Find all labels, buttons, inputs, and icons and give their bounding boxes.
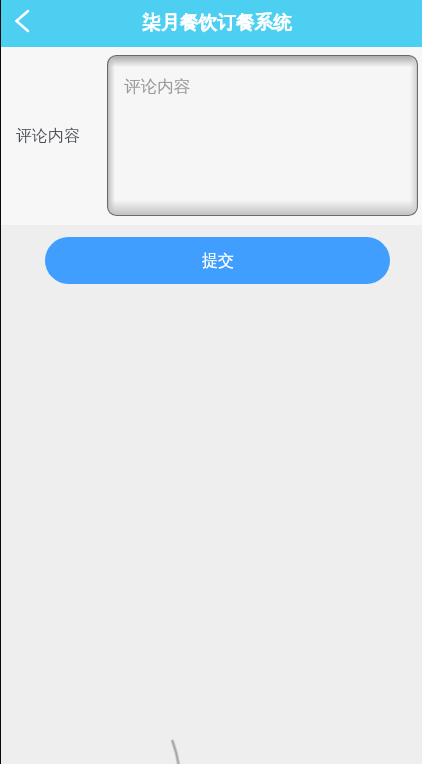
button[interactable]: 提交 xyxy=(45,237,390,284)
staticText: 评论内容 xyxy=(124,76,190,97)
staticText: 提交 xyxy=(202,251,234,271)
staticText: 柒月餐饮订餐系统 xyxy=(142,11,292,35)
button[interactable]: 评论内容输入框 xyxy=(107,55,418,216)
staticText: 评论内容 xyxy=(16,126,80,146)
button[interactable]: Back xyxy=(0,0,44,44)
